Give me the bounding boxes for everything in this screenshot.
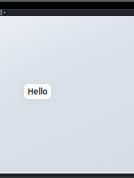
staticText: Hello <box>27 86 47 97</box>
button[interactable]: Site icon <box>0 9 7 16</box>
button[interactable]: Hello <box>24 84 51 99</box>
